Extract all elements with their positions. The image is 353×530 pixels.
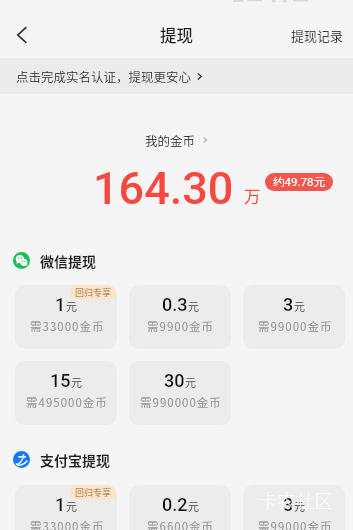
- staticText: 需33000金币: [30, 318, 105, 335]
- staticText: 需495000金币: [26, 394, 108, 411]
- staticText: 30: [164, 370, 185, 391]
- staticText: 15: [50, 370, 71, 391]
- staticText: 微信提现: [40, 251, 96, 271]
- staticText: 3: [283, 294, 294, 315]
- button[interactable]: 3: [243, 485, 345, 530]
- button[interactable]: 提现: [0, 13, 353, 57]
- staticText: 元: [294, 498, 305, 514]
- button[interactable]: 3: [243, 285, 345, 349]
- staticText: 需6600金币: [147, 518, 215, 530]
- button[interactable]: 约49.78元: [273, 173, 325, 191]
- other: Alipay: [13, 451, 30, 468]
- staticText: 约49.78元: [273, 175, 325, 189]
- staticText: 元: [188, 498, 199, 514]
- button[interactable]: Alipay: [13, 451, 110, 468]
- button[interactable]: 回归专享: [15, 485, 117, 530]
- staticText: 0.2: [162, 494, 188, 515]
- staticText: 元: [71, 374, 82, 390]
- other: WeChat: [13, 252, 30, 269]
- staticText: 万: [244, 184, 261, 208]
- staticText: 提现: [160, 23, 193, 47]
- staticText: 元: [185, 374, 196, 390]
- button[interactable]: 0.3: [129, 285, 231, 349]
- staticText: 164.30: [93, 162, 234, 215]
- staticText: 1: [55, 494, 66, 515]
- staticText: 回归专享: [75, 286, 112, 299]
- staticText: 0.3: [162, 294, 188, 315]
- button[interactable]: WeChat: [13, 252, 96, 269]
- staticText: 支付宝提现: [40, 450, 110, 470]
- staticText: 1: [55, 294, 66, 315]
- staticText: 需99000金币: [258, 318, 333, 335]
- staticText: 元: [66, 498, 77, 514]
- staticText: 需33000金币: [30, 518, 105, 530]
- staticText: 元: [188, 298, 199, 314]
- button[interactable]: 30: [129, 361, 231, 425]
- button[interactable]: 点击完成实名认证，提现更安心: [0, 58, 353, 94]
- button[interactable]: 提现记录: [282, 13, 353, 57]
- staticText: 3: [283, 494, 294, 515]
- button[interactable]: Back: [0, 13, 44, 57]
- staticText: 元: [294, 298, 305, 314]
- staticText: 点击完成实名认证，提现更安心: [16, 67, 192, 85]
- staticText: 需9900金币: [147, 318, 215, 335]
- button[interactable]: 回归专享: [15, 285, 117, 349]
- staticText: 卡农社区: [259, 487, 334, 513]
- staticText: 需990000金币: [140, 394, 222, 411]
- button[interactable]: 我的金币: [0, 130, 353, 150]
- staticText: 提现记录: [291, 26, 344, 45]
- button[interactable]: 0.2: [129, 485, 231, 530]
- staticText: 回归专享: [75, 486, 112, 499]
- staticText: 元: [66, 298, 77, 314]
- staticText: 我的金币: [145, 131, 196, 149]
- button[interactable]: 15: [15, 361, 117, 425]
- staticText: 需99000金币: [258, 518, 333, 530]
